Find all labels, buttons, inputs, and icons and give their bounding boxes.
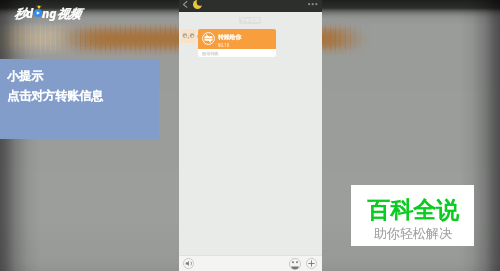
staticText: ¥0.10 — [218, 42, 230, 48]
staticText: ng视频 — [42, 5, 81, 21]
staticText: 下午3:50 — [240, 17, 260, 24]
staticText: 转账给你 — [218, 33, 242, 40]
staticText: 点击对方转账信息 — [7, 88, 103, 103]
button[interactable]: 转账给你 — [198, 29, 276, 57]
staticText: 百科全说 — [367, 196, 459, 225]
staticText: 小提示 — [7, 68, 43, 83]
button[interactable]: More functions — [306, 258, 317, 269]
button[interactable]: More options — [305, 0, 319, 9]
staticText: 助你轻松解决 — [374, 225, 452, 241]
button[interactable]: Back — [180, 0, 190, 9]
staticText: 秒d — [14, 5, 34, 21]
staticText: 微信转账 — [202, 51, 219, 56]
button[interactable]: Voice message — [183, 258, 194, 269]
button[interactable]: Emoji — [289, 258, 301, 270]
